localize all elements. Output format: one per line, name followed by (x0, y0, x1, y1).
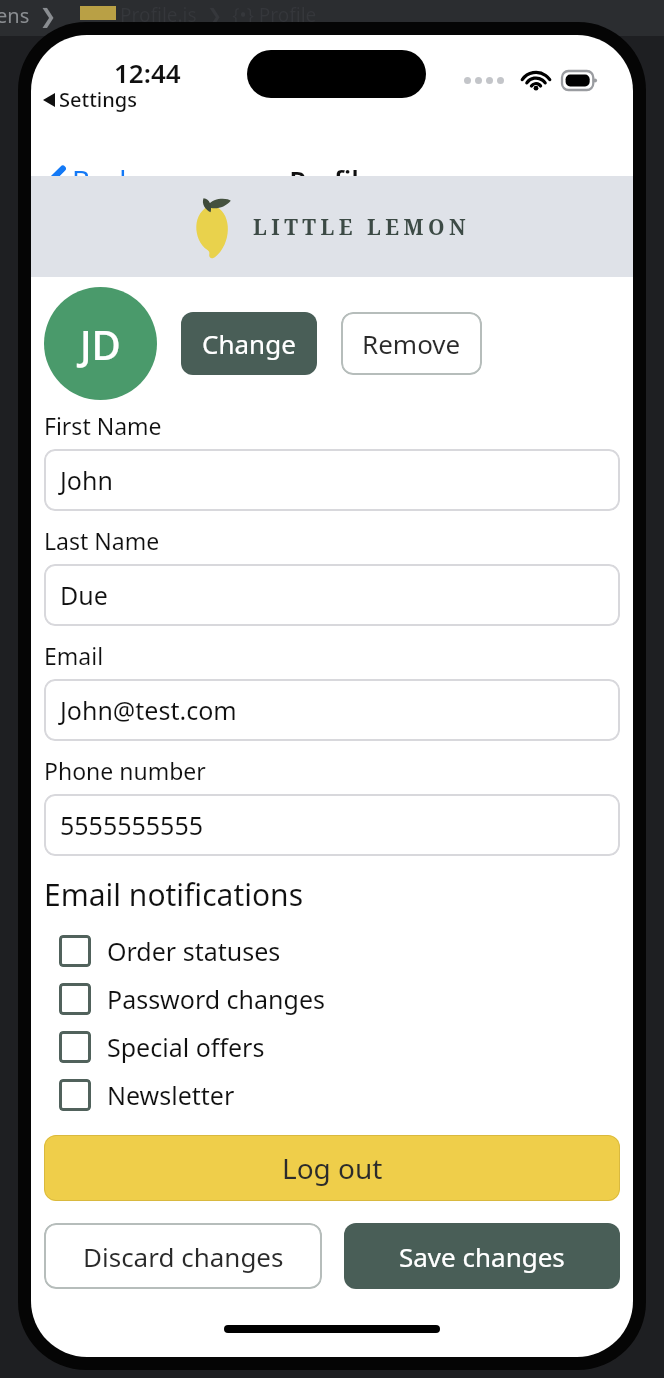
staticText: LITTLE LEMON (253, 213, 471, 242)
staticText: Phone number (44, 755, 206, 786)
staticText: Log out (282, 1149, 383, 1187)
button[interactable]: Discard changes (44, 1223, 322, 1289)
staticText: Profile (31, 162, 633, 199)
button[interactable]: Password changes (44, 975, 620, 1023)
button[interactable]: Order statuses (44, 927, 620, 975)
button[interactable]: John (44, 449, 620, 511)
button[interactable]: Change (181, 312, 317, 375)
staticText: John@test.com (60, 693, 237, 727)
staticText: Password changes (107, 982, 325, 1016)
staticText: Settings (59, 86, 137, 113)
staticText: Email notifications (44, 874, 304, 915)
staticText: JD (80, 317, 121, 371)
button[interactable]: Log out (44, 1135, 620, 1201)
staticText: First Name (44, 410, 162, 441)
staticText: Due (60, 578, 108, 612)
button[interactable]: Back (43, 157, 141, 203)
staticText: Newsletter (107, 1078, 235, 1112)
staticText: Remove (362, 326, 461, 361)
button[interactable]: Remove (341, 312, 482, 375)
staticText: Save changes (399, 1239, 565, 1274)
staticText: Email (44, 640, 104, 671)
staticText: 5555555555 (60, 808, 204, 842)
staticText: Change (202, 326, 296, 361)
staticText: Special offers (107, 1030, 265, 1064)
staticText: Back (72, 161, 135, 199)
staticText: John (60, 463, 113, 497)
button[interactable]: Profile avatar JD (44, 287, 157, 400)
staticText: ens ❯ (0, 2, 57, 29)
staticText: Order statuses (107, 934, 281, 968)
staticText: 12:44 (114, 55, 181, 90)
staticText: Profile.js ❯ {•} Profile (120, 2, 317, 28)
button[interactable]: John@test.com (44, 679, 620, 741)
staticText: Last Name (44, 525, 160, 556)
button[interactable]: Due (44, 564, 620, 626)
staticText: Discard changes (83, 1239, 284, 1274)
button[interactable]: Save changes (344, 1223, 620, 1289)
button[interactable]: 5555555555 (44, 794, 620, 856)
button[interactable]: Special offers (44, 1023, 620, 1071)
button[interactable]: Newsletter (44, 1071, 620, 1119)
